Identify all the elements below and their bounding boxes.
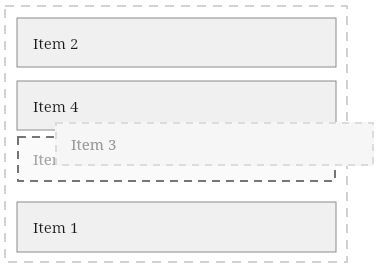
staticText: Item 4 <box>33 96 79 116</box>
staticText: Item 3 <box>33 149 79 169</box>
staticText: Item 3 <box>71 134 117 154</box>
staticText: Item 1 <box>33 217 79 237</box>
staticText: Item 2 <box>33 33 79 53</box>
button[interactable]: Item 3 <box>17 136 336 182</box>
button[interactable]: Item 3 <box>55 122 374 166</box>
other: Reorderable list container <box>4 5 348 263</box>
button[interactable]: Item 4 <box>17 81 336 130</box>
button[interactable]: Item 1 <box>17 202 336 252</box>
button[interactable]: Item 2 <box>17 18 336 67</box>
